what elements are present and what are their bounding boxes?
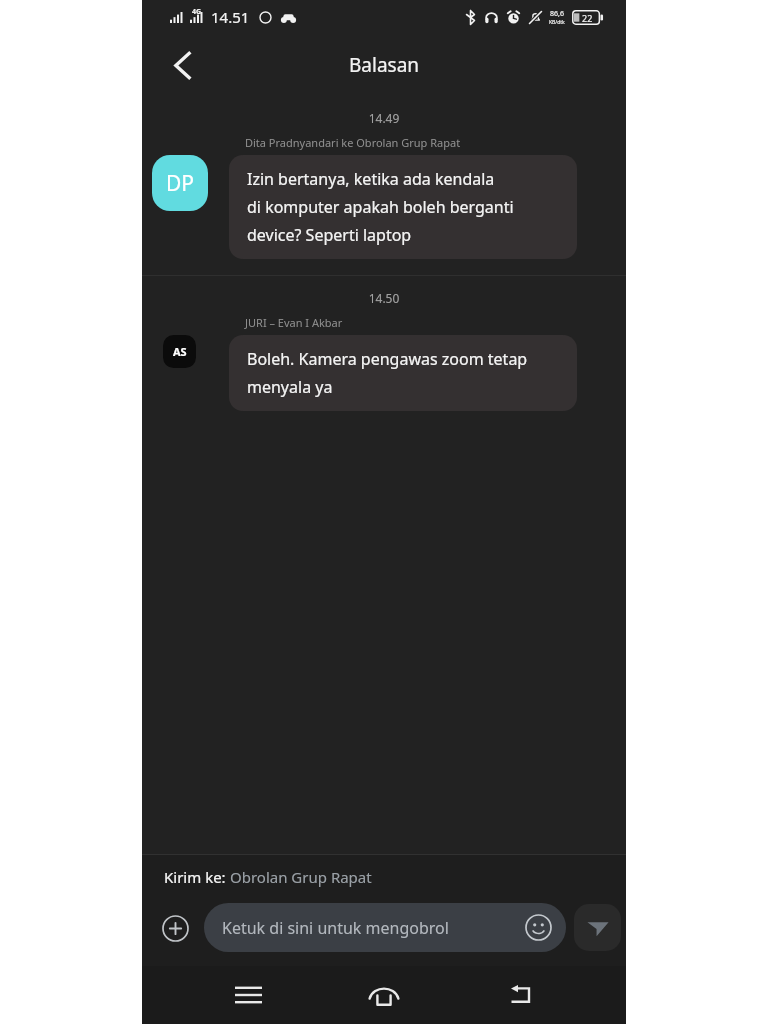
button[interactable]: 14.49 [142,96,626,275]
staticText: menyala ya [247,376,333,398]
staticText: Balasan [349,52,420,78]
staticText: AS [173,344,187,359]
staticText: 14.50 [142,290,626,306]
staticText: 22 [582,12,593,24]
staticText: Ketuk di sini untuk mengobrol [222,917,525,939]
button[interactable]: Recents [217,966,279,1024]
staticText: Obrolan Grup Rapat [230,867,372,887]
staticText: Kirim ke: [164,867,230,887]
button[interactable]: Ketuk di sini untuk mengobrol [204,903,566,952]
button[interactable]: 14.50 [142,276,626,427]
staticText: di komputer apakah boleh berganti [247,196,514,218]
staticText: device? Seperti laptop [247,224,412,246]
staticText: Izin bertanya, ketika ada kendala [247,168,495,190]
staticText: Dita Pradnyandari ke Obrolan Grup Rapat [245,135,461,150]
staticText: 4G [192,7,202,17]
button[interactable]: Add attachment [153,906,197,950]
staticText: Boleh. Kamera pengawas zoom tetap [247,348,528,370]
staticText: 14.49 [142,110,626,126]
staticText: 86,6 [550,9,564,19]
button[interactable]: Back [156,39,208,91]
staticText: JURI – Evan I Akbar [245,315,343,330]
button[interactable]: Send [574,904,621,951]
staticText: 14.51 [211,7,250,27]
staticText: KB/dtk [549,19,565,26]
button[interactable]: Back [490,966,552,1024]
staticText: DP [166,169,195,198]
button[interactable]: Home [353,966,415,1024]
